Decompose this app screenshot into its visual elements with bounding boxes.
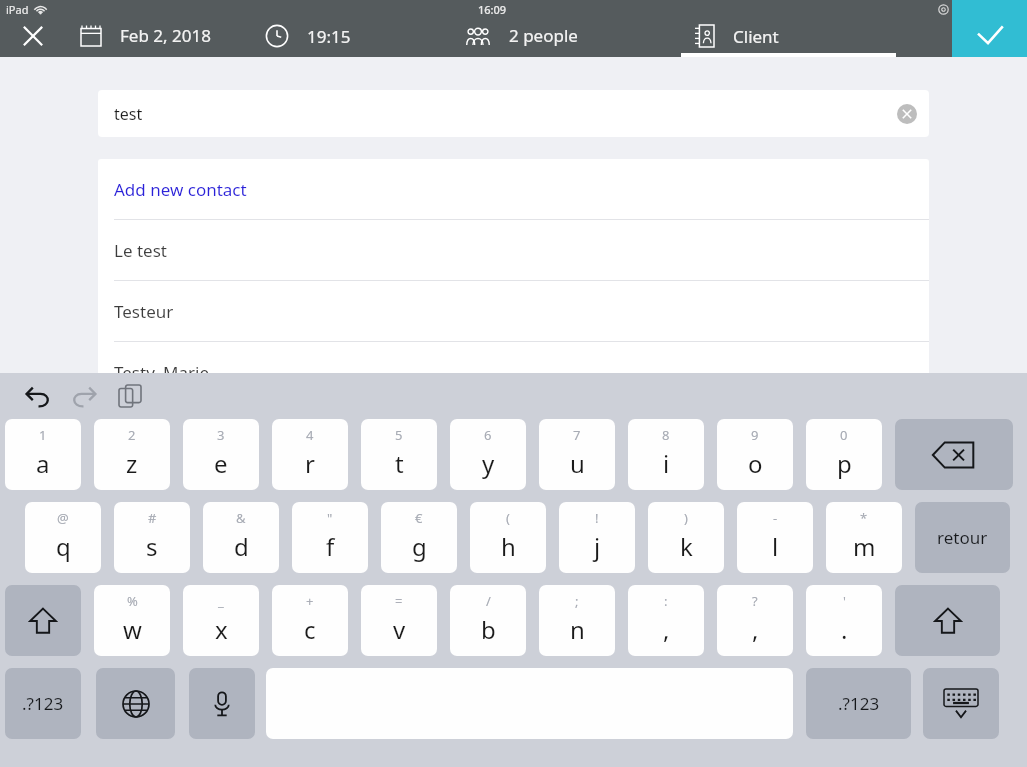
staticText: retour: [937, 526, 988, 549]
staticText: t: [395, 447, 404, 480]
button[interactable]: ;: [539, 585, 615, 656]
staticText: 7: [573, 426, 581, 444]
staticText: q: [56, 530, 71, 563]
button[interactable]: .?123: [806, 668, 911, 739]
button[interactable]: &: [203, 502, 279, 573]
staticText: Le test: [114, 239, 167, 262]
button[interactable]: ?: [717, 585, 793, 656]
button[interactable]: Dictate: [189, 668, 255, 739]
button[interactable]: Backspace: [895, 419, 1013, 490]
staticText: i: [663, 447, 670, 480]
staticText: j: [594, 530, 601, 563]
button[interactable]: .?123: [5, 668, 81, 739]
staticText: .?123: [838, 692, 880, 715]
button[interactable]: ': [806, 585, 882, 656]
staticText: 4: [306, 426, 314, 444]
button[interactable]: !: [559, 502, 635, 573]
button[interactable]: Feb 2, 2018: [66, 14, 251, 57]
button[interactable]: 19:15: [251, 14, 451, 57]
staticText: ,: [663, 613, 670, 646]
button[interactable]: retour: [915, 502, 1010, 573]
staticText: ?: [752, 592, 758, 610]
staticText: k: [680, 530, 693, 563]
staticText: v: [393, 613, 406, 646]
button[interactable]: -: [737, 502, 813, 573]
staticText: test: [114, 103, 143, 125]
button[interactable]: Close: [0, 14, 66, 57]
button[interactable]: *: [826, 502, 902, 573]
button[interactable]: Paste: [110, 376, 150, 416]
button[interactable]: ": [292, 502, 368, 573]
button[interactable]: Confirm: [952, 0, 1027, 57]
staticText: w: [123, 613, 142, 646]
button[interactable]: Change language: [96, 668, 175, 739]
button[interactable]: Clear text: [897, 104, 917, 124]
button[interactable]: 2 people: [451, 14, 681, 57]
button[interactable]: €: [381, 502, 457, 573]
button[interactable]: test: [98, 90, 929, 137]
staticText: ,: [752, 613, 759, 646]
button[interactable]: 1: [5, 419, 81, 490]
staticText: h: [501, 530, 516, 563]
staticText: 19:15: [307, 25, 351, 48]
staticText: p: [837, 447, 852, 480]
button[interactable]: Testeur: [98, 281, 929, 341]
staticText: @: [57, 509, 69, 527]
button[interactable]: 2: [94, 419, 170, 490]
button[interactable]: Client: [681, 14, 896, 57]
staticText: a: [36, 447, 50, 480]
button[interactable]: 3: [183, 419, 259, 490]
staticText: r: [305, 447, 315, 480]
button[interactable]: 9: [717, 419, 793, 490]
button[interactable]: =: [361, 585, 437, 656]
staticText: c: [304, 613, 316, 646]
button[interactable]: +: [272, 585, 348, 656]
button[interactable]: Shift: [5, 585, 81, 656]
staticText: (: [506, 509, 510, 527]
button[interactable]: 6: [450, 419, 526, 490]
button[interactable]: Shift: [895, 585, 1000, 656]
button[interactable]: _: [183, 585, 259, 656]
button[interactable]: 4: [272, 419, 348, 490]
button[interactable]: /: [450, 585, 526, 656]
staticText: 8: [662, 426, 670, 444]
button[interactable]: 8: [628, 419, 704, 490]
button[interactable]: Le test: [98, 220, 929, 280]
staticText: Testeur: [114, 300, 174, 323]
staticText: &: [236, 509, 246, 527]
staticText: Testy, Marie: [114, 361, 210, 384]
button[interactable]: 0: [806, 419, 882, 490]
button[interactable]: #: [114, 502, 190, 573]
button[interactable]: (: [470, 502, 546, 573]
button[interactable]: %: [94, 585, 170, 656]
staticText: l: [772, 530, 779, 563]
button[interactable]: 7: [539, 419, 615, 490]
staticText: :: [664, 592, 668, 610]
staticText: +: [306, 592, 314, 610]
staticText: 2: [128, 426, 136, 444]
staticText: /: [486, 592, 491, 610]
button[interactable]: Add new contact: [98, 159, 929, 219]
button[interactable]: 5: [361, 419, 437, 490]
button[interactable]: Redo: [64, 376, 104, 416]
button[interactable]: Undo: [18, 376, 58, 416]
button[interactable]: Hide keyboard: [923, 668, 999, 739]
staticText: s: [146, 530, 158, 563]
button[interactable]: ): [648, 502, 724, 573]
staticText: 3: [217, 426, 225, 444]
staticText: y: [482, 447, 495, 480]
button[interactable]: @: [25, 502, 101, 573]
staticText: ): [684, 509, 688, 527]
staticText: 5: [395, 426, 403, 444]
staticText: iPad: [6, 2, 29, 17]
button[interactable]: :: [628, 585, 704, 656]
staticText: %: [127, 592, 138, 610]
staticText: _: [218, 592, 224, 610]
staticText: Client: [733, 25, 779, 48]
staticText: n: [570, 613, 585, 646]
staticText: .: [841, 613, 848, 646]
button[interactable]: Testy, Marie: [98, 342, 929, 402]
staticText: =: [395, 592, 403, 610]
